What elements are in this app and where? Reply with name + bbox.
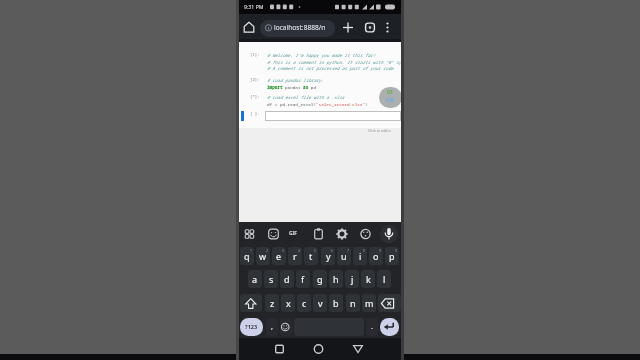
staticText: # Load excel file with a .xlsx [267, 94, 345, 100]
staticText: h [333, 273, 339, 285]
button[interactable] [280, 318, 292, 336]
staticText: g [317, 273, 323, 285]
staticText: 9:31 PM [244, 3, 264, 10]
staticText: t [309, 250, 313, 262]
button[interactable]: a [248, 270, 262, 288]
staticText: 1 [250, 248, 252, 253]
button[interactable]: q [240, 247, 254, 265]
button[interactable] [270, 340, 289, 358]
button[interactable]: f [296, 270, 310, 288]
staticText: z [270, 297, 275, 309]
button[interactable] [361, 17, 379, 38]
staticText: e [276, 250, 282, 262]
staticText: k [366, 273, 371, 285]
button[interactable]: y [321, 247, 335, 265]
staticText: [ ]: [250, 111, 260, 116]
button[interactable]: k [361, 270, 375, 288]
button[interactable] [241, 224, 258, 244]
button[interactable] [241, 17, 257, 38]
button[interactable] [333, 224, 350, 244]
staticText: localhost:8888/n [274, 23, 326, 32]
button[interactable]: ?123 [240, 318, 263, 336]
staticText: n [350, 297, 356, 309]
button[interactable]: . [366, 318, 378, 336]
button[interactable]: n [346, 294, 360, 312]
button[interactable]: p [385, 247, 399, 265]
staticText: [1]: [250, 52, 260, 57]
staticText: 2 [266, 248, 268, 253]
staticText: b [333, 297, 339, 309]
staticText: , [271, 322, 273, 332]
staticText: y [326, 250, 331, 262]
button[interactable] [265, 111, 401, 121]
button[interactable] [339, 17, 357, 38]
button[interactable] [379, 17, 397, 38]
staticText: l [383, 273, 386, 285]
staticText: m [365, 297, 374, 309]
staticText: u [341, 250, 347, 262]
button[interactable]: t [304, 247, 318, 265]
staticText: df = pd.read_excel("sales_record.xlsx") [267, 101, 368, 107]
button[interactable]: l [377, 270, 391, 288]
button[interactable] [265, 224, 282, 244]
button[interactable] [379, 87, 401, 108]
staticText: 4 [298, 248, 300, 253]
button[interactable]: g [313, 270, 327, 288]
staticText: s [269, 273, 274, 285]
button[interactable] [348, 340, 367, 358]
staticText: w [259, 250, 267, 262]
staticText: 3 [282, 248, 284, 253]
button[interactable] [378, 294, 401, 312]
button[interactable]: z [265, 294, 279, 312]
staticText: # Load pandas library. [267, 77, 324, 83]
staticText: a [252, 273, 258, 285]
staticText: o [373, 250, 379, 262]
button[interactable] [379, 224, 399, 244]
staticText: p [389, 250, 395, 262]
staticText: v [318, 297, 323, 309]
button[interactable]: b [329, 294, 343, 312]
button[interactable]: o [369, 247, 383, 265]
staticText: 9 [379, 248, 381, 253]
button[interactable] [310, 224, 327, 244]
button[interactable] [380, 318, 399, 336]
staticText: q [244, 250, 250, 262]
button[interactable]: h [329, 270, 343, 288]
button[interactable]: i [353, 247, 367, 265]
staticText: # Welcome. I'm happy you made it this fa… [267, 52, 376, 58]
button[interactable]: j [345, 270, 359, 288]
staticText: i [359, 250, 362, 262]
button[interactable] [287, 224, 304, 244]
staticText: CA [386, 96, 395, 104]
staticText: 7 [347, 248, 349, 253]
staticText: GIF [289, 230, 297, 237]
staticText: 03 [387, 89, 393, 96]
staticText: f [301, 273, 305, 285]
staticText: d [284, 273, 290, 285]
button[interactable]: u [337, 247, 351, 265]
staticText: 6 [331, 248, 333, 253]
staticText: 8 [363, 248, 365, 253]
button[interactable]: r [288, 247, 302, 265]
button[interactable] [357, 224, 374, 244]
staticText: j [351, 273, 354, 285]
button[interactable]: e [272, 247, 286, 265]
button[interactable]: v [313, 294, 327, 312]
button[interactable]: c [297, 294, 311, 312]
staticText: x [286, 297, 291, 309]
button[interactable]: , [266, 318, 278, 336]
button[interactable]: x [281, 294, 295, 312]
staticText: # A comment is not processed as part of … [267, 65, 396, 71]
button[interactable] [240, 294, 262, 312]
staticText: [*]: [250, 94, 260, 99]
button[interactable]: w [256, 247, 270, 265]
staticText: 0 [395, 248, 397, 253]
button[interactable] [260, 20, 335, 37]
button[interactable]: d [280, 270, 294, 288]
button[interactable]: m [362, 294, 376, 312]
button[interactable]: s [264, 270, 278, 288]
staticText: # This is a comment in python. It starts… [267, 59, 401, 65]
staticText: . [371, 322, 373, 332]
button[interactable] [309, 340, 328, 358]
